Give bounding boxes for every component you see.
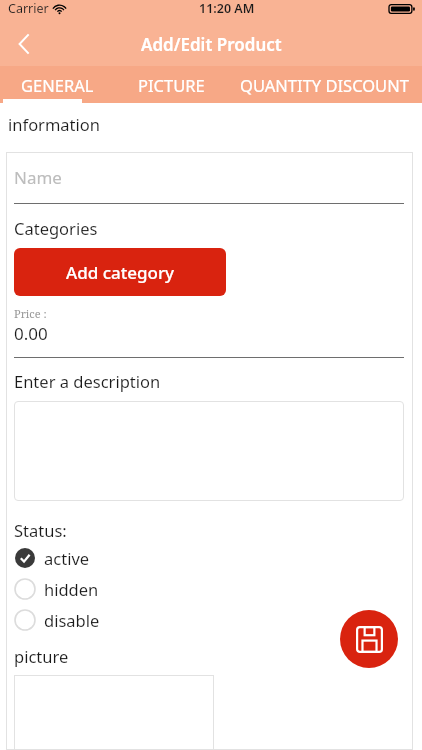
staticText: information xyxy=(8,113,101,135)
staticText: Status: xyxy=(14,519,67,541)
button[interactable]: QUANTITY DISCOUNT xyxy=(227,66,422,103)
button[interactable]: Add category xyxy=(14,248,226,296)
button[interactable]: GENERAL xyxy=(0,66,115,103)
button[interactable] xyxy=(14,401,404,501)
staticText: active xyxy=(44,547,90,569)
staticText: 0.00 xyxy=(14,322,48,345)
staticText: GENERAL xyxy=(21,74,94,96)
staticText: disable xyxy=(44,609,100,631)
button[interactable]: hidden xyxy=(14,578,99,600)
staticText: Name xyxy=(14,166,62,189)
staticText: Carrier xyxy=(8,0,49,17)
staticText: hidden xyxy=(44,578,99,600)
button[interactable]: Save xyxy=(340,610,398,668)
button[interactable]: Back xyxy=(0,22,48,66)
staticText: Add category xyxy=(66,261,175,284)
button[interactable]: PICTURE xyxy=(115,66,227,103)
staticText: Price : xyxy=(14,306,47,321)
staticText: QUANTITY DISCOUNT xyxy=(240,74,409,96)
staticText: PICTURE xyxy=(138,74,205,96)
button[interactable] xyxy=(14,675,214,750)
staticText: Add/Edit Product xyxy=(141,33,282,56)
staticText: Categories xyxy=(14,217,98,239)
staticText: picture xyxy=(14,645,69,667)
staticText: 11:20 AM xyxy=(199,0,255,17)
staticText: Enter a description xyxy=(14,370,161,392)
button[interactable]: disable xyxy=(14,609,100,631)
button[interactable]: active xyxy=(14,547,90,569)
